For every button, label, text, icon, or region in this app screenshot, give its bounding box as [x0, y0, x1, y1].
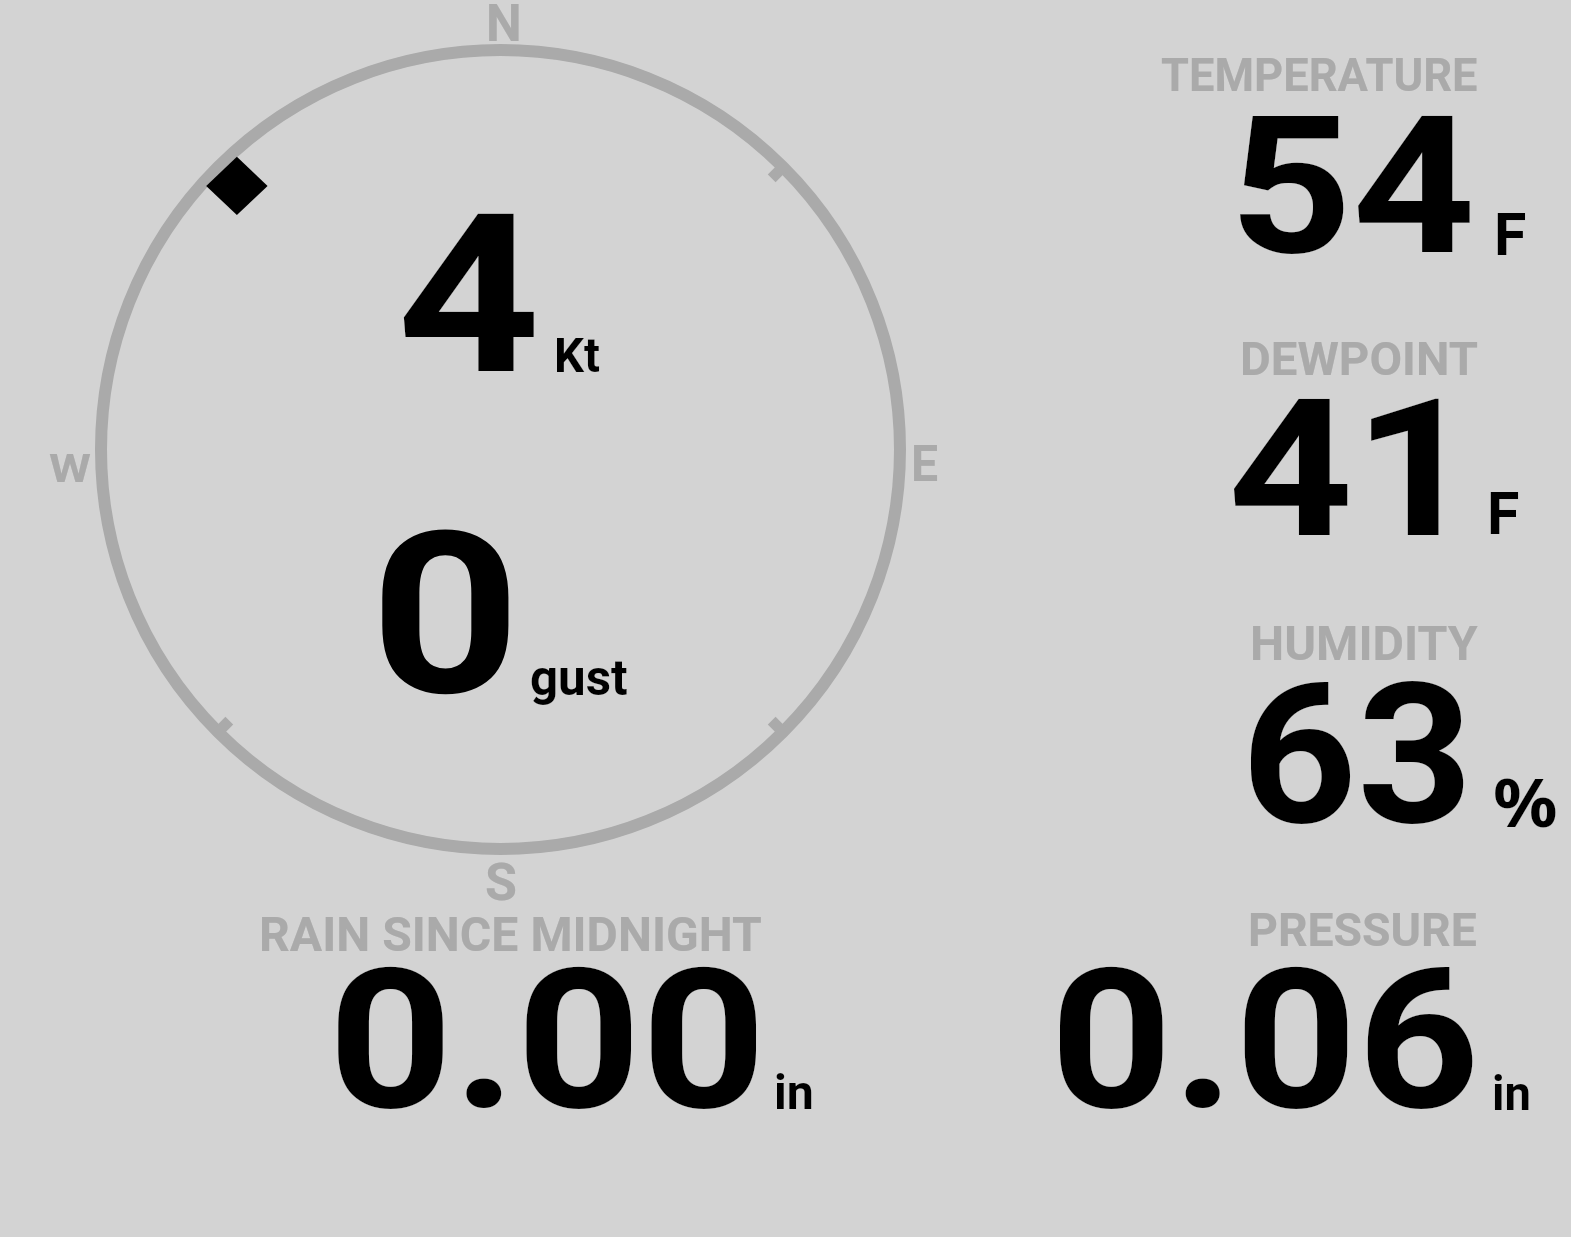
- staticText: E: [911, 434, 938, 493]
- staticText: N: [486, 0, 522, 53]
- staticText: %: [1493, 756, 1558, 846]
- staticText: Kt: [554, 328, 600, 383]
- button[interactable]: Dew point 41 degrees Fahrenheit: [1140, 315, 1560, 555]
- staticText: 41: [1228, 358, 1479, 582]
- staticText: in: [774, 1065, 814, 1121]
- staticText: 54: [1229, 74, 1476, 299]
- staticText: PRESSURE: [1248, 903, 1477, 958]
- button[interactable]: Temperature 54 degrees Fahrenheit: [1140, 30, 1560, 270]
- staticText: 63: [1241, 641, 1473, 870]
- staticText: 4: [397, 165, 541, 425]
- staticText: 0.06: [1050, 927, 1480, 1155]
- staticText: DEWPOINT: [1240, 332, 1479, 387]
- button[interactable]: Rain since midnight 0.00 inches: [240, 890, 840, 1130]
- staticText: TEMPERATURE: [1161, 48, 1478, 102]
- staticText: 0.00: [328, 927, 766, 1155]
- staticText: 0: [370, 483, 521, 747]
- button[interactable]: Humidity 63 percent: [1140, 600, 1560, 840]
- button[interactable]: Wind 4 knots, gusting 0, direction north…: [90, 40, 910, 860]
- staticText: S: [485, 852, 517, 913]
- staticText: W: [49, 446, 91, 491]
- staticText: HUMIDITY: [1250, 616, 1478, 672]
- staticText: F: [1494, 199, 1526, 269]
- staticText: F: [1487, 479, 1520, 549]
- staticText: gust: [530, 649, 628, 707]
- staticText: in: [1492, 1065, 1531, 1121]
- staticText: RAIN SINCE MIDNIGHT: [259, 907, 763, 962]
- button[interactable]: Pressure 0.06 inches: [1020, 890, 1560, 1130]
